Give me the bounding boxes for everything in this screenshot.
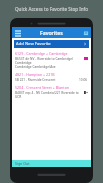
staticText: SB 221 - Riverside Crescent [15, 78, 56, 82]
staticText: B6537 dir NV - Riverside to Cambridge/Ca… [15, 57, 83, 65]
button[interactable]: 5204 - Crescent Street + Blanton [12, 84, 91, 101]
staticText: 6129 - Cambridge + Cambridge [15, 51, 88, 56]
staticText: Sign Out [15, 161, 30, 166]
staticText: 10:06 [79, 78, 88, 82]
button[interactable]: Open navigation menu [12, 27, 23, 38]
button[interactable]: Transit alerts [80, 27, 91, 38]
button[interactable]: Sign Out [12, 160, 91, 167]
staticText: 5204 - Crescent Street + Blanton [15, 85, 88, 90]
staticText: B4837 exp 4 - NV Cambria/221 Riverside t… [15, 91, 83, 99]
staticText: Add New Favorite [16, 41, 51, 47]
staticText: Favorites [40, 29, 63, 36]
button[interactable]: 4821 - Hampton + 221B [12, 71, 91, 84]
button[interactable]: 6129 - Cambridge + Cambridge [12, 50, 91, 71]
staticText: Quick Access to Favorite Stop Info [15, 6, 88, 12]
staticText: 4821 - Hampton + 221B [15, 72, 88, 77]
button[interactable]: Add New Favorite [14, 40, 89, 48]
staticText: Cambridge Cambridge/Ave [15, 65, 56, 69]
